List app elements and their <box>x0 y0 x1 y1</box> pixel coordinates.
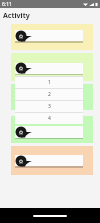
button[interactable]: Favourite <box>14 154 36 168</box>
staticText: 4 <box>48 115 51 122</box>
staticText: 2 <box>48 91 51 98</box>
button[interactable]: 3 <box>15 100 83 112</box>
button[interactable]: 1 <box>15 76 83 88</box>
staticText: Activity <box>3 11 30 21</box>
button[interactable]: Favourite <box>14 125 36 139</box>
button[interactable]: 4 <box>15 112 83 124</box>
button[interactable]: Favourite <box>14 61 36 75</box>
button[interactable] <box>11 53 93 81</box>
staticText: 3 <box>48 103 51 110</box>
button[interactable] <box>11 84 93 110</box>
button[interactable] <box>11 24 93 50</box>
button[interactable]: 2 <box>15 88 83 100</box>
button[interactable] <box>11 116 93 143</box>
button[interactable] <box>11 146 93 175</box>
staticText: 1 <box>48 79 51 86</box>
staticText: 6:11 <box>2 1 12 8</box>
button[interactable]: Favourite <box>14 29 36 43</box>
